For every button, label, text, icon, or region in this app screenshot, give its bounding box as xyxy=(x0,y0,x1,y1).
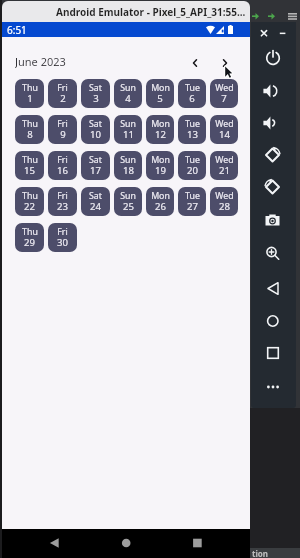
staticText: Mon xyxy=(151,154,170,166)
staticText: Sun xyxy=(120,82,136,94)
staticText: Sat xyxy=(89,82,102,94)
staticText: Tue xyxy=(185,82,200,94)
staticText: Sun xyxy=(120,118,136,130)
staticText: 23 xyxy=(57,200,68,213)
button[interactable]: Wed xyxy=(210,79,238,108)
button[interactable]: Thu xyxy=(15,223,44,252)
staticText: 6:51 xyxy=(7,23,27,37)
staticText: Android Emulator - Pixel_5_API_31:55... xyxy=(56,5,246,19)
button[interactable]: Sun xyxy=(114,187,142,216)
staticText: 2 xyxy=(60,92,66,105)
button[interactable]: Mon xyxy=(146,151,174,180)
button[interactable]: Sun xyxy=(114,115,142,144)
button[interactable]: Sat xyxy=(81,187,110,216)
button[interactable]: Mon xyxy=(146,79,174,108)
staticText: 14 xyxy=(219,128,230,141)
staticText: 11 xyxy=(123,128,134,141)
staticText: Sat xyxy=(89,190,102,202)
staticText: 20 xyxy=(187,164,198,177)
staticText: 12 xyxy=(155,128,166,141)
button[interactable]: Thu xyxy=(15,79,44,108)
staticText: 19 xyxy=(155,164,166,177)
button[interactable]: Thu xyxy=(15,187,44,216)
staticText: Fri xyxy=(57,154,68,166)
button[interactable]: Fri xyxy=(48,187,77,216)
button[interactable]: Thu xyxy=(15,115,44,144)
staticText: 8 xyxy=(27,128,33,141)
staticText: 18 xyxy=(123,164,134,177)
button[interactable]: Thu xyxy=(15,151,44,180)
staticText: 26 xyxy=(155,200,166,213)
staticText: 24 xyxy=(90,200,101,213)
staticText: Mon xyxy=(151,190,170,202)
staticText: Mon xyxy=(151,118,170,130)
staticText: 22 xyxy=(24,200,35,213)
staticText: Tue xyxy=(185,190,200,202)
button[interactable]: Fri xyxy=(48,151,77,180)
staticText: 9 xyxy=(60,128,66,141)
staticText: Fri xyxy=(57,226,68,238)
staticText: Tue xyxy=(185,118,200,130)
button[interactable]: Tue xyxy=(178,115,206,144)
button[interactable]: Tue xyxy=(178,187,206,216)
staticText: Sat xyxy=(89,154,102,166)
button[interactable]: Wed xyxy=(210,151,238,180)
staticText: Thu xyxy=(22,118,38,130)
button[interactable]: Mon xyxy=(146,115,174,144)
button[interactable]: Tue xyxy=(178,151,206,180)
staticText: Fri xyxy=(57,118,68,130)
button[interactable]: Wed xyxy=(210,115,238,144)
staticText: 7 xyxy=(221,92,227,105)
button[interactable]: Next month xyxy=(217,56,233,70)
staticText: 28 xyxy=(219,200,230,213)
staticText: tion xyxy=(252,548,269,558)
staticText: Thu xyxy=(22,190,38,202)
button[interactable]: Previous month xyxy=(187,56,203,70)
button[interactable]: Mon xyxy=(146,187,174,216)
staticText: Sat xyxy=(89,118,102,130)
staticText: 27 xyxy=(187,200,198,213)
staticText: Tue xyxy=(185,154,200,166)
staticText: Wed xyxy=(215,154,234,166)
button[interactable]: Fri xyxy=(48,79,77,108)
staticText: Wed xyxy=(215,82,234,94)
button[interactable]: Wed xyxy=(210,187,238,216)
staticText: 13 xyxy=(187,128,198,141)
staticText: 25 xyxy=(123,200,134,213)
staticText: Thu xyxy=(22,82,38,94)
staticText: 4 xyxy=(125,92,131,105)
staticText: Wed xyxy=(215,118,234,130)
staticText: 3 xyxy=(93,92,99,105)
button[interactable]: Fri xyxy=(48,223,77,252)
button[interactable]: Sat xyxy=(81,115,110,144)
button[interactable]: Tue xyxy=(178,79,206,108)
button[interactable]: Sat xyxy=(81,151,110,180)
staticText: June 2023 xyxy=(15,54,66,68)
button[interactable]: Fri xyxy=(48,115,77,144)
staticText: Sun xyxy=(120,190,136,202)
staticText: 1 xyxy=(27,92,33,105)
staticText: Mon xyxy=(151,82,170,94)
staticText: 16 xyxy=(57,164,68,177)
staticText: Fri xyxy=(57,82,68,94)
staticText: Sun xyxy=(120,154,136,166)
staticText: Wed xyxy=(215,190,234,202)
staticText: 21 xyxy=(219,164,230,177)
staticText: 29 xyxy=(24,236,35,249)
staticText: Fri xyxy=(57,190,68,202)
staticText: 5 xyxy=(157,92,163,105)
staticText: 10 xyxy=(90,128,101,141)
staticText: 15 xyxy=(24,164,35,177)
staticText: 30 xyxy=(57,236,68,249)
button[interactable]: Sun xyxy=(114,79,142,108)
staticText: 17 xyxy=(90,164,101,177)
button[interactable]: Sun xyxy=(114,151,142,180)
staticText: 6 xyxy=(189,92,195,105)
staticText: Thu xyxy=(22,154,38,166)
button[interactable]: Sat xyxy=(81,79,110,108)
staticText: Thu xyxy=(22,226,38,238)
